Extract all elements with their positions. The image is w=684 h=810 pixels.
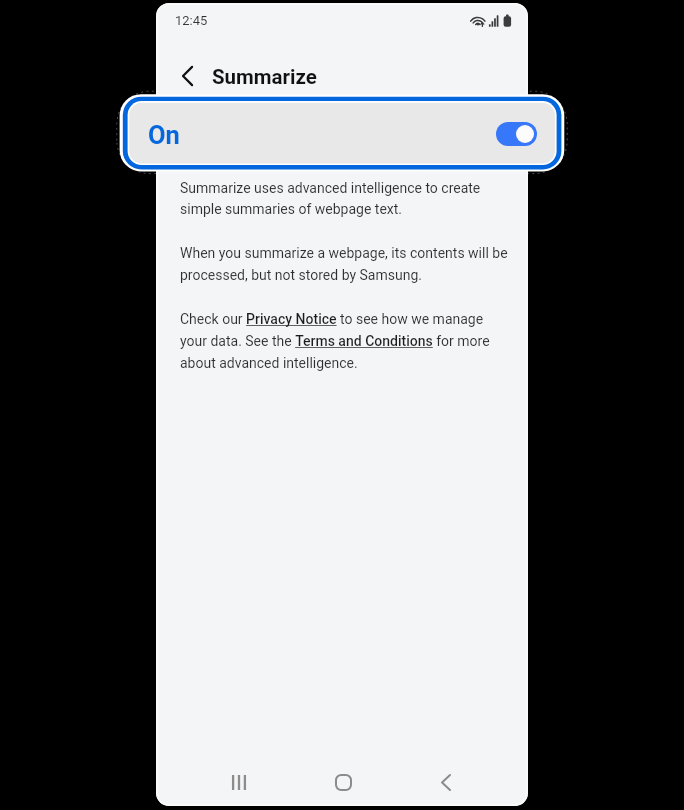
button[interactable]: Recent apps <box>211 760 267 804</box>
button[interactable]: Back <box>418 760 474 804</box>
button[interactable]: Home <box>315 760 371 804</box>
staticText: On <box>148 120 180 150</box>
button[interactable]: On <box>119 93 565 172</box>
staticText: 12:45 <box>175 13 208 28</box>
button[interactable]: Summarize on <box>496 122 537 146</box>
button[interactable]: Back <box>170 59 204 93</box>
staticText: Summarize <box>212 65 317 89</box>
staticText: Summarize uses advanced intelligence to … <box>180 180 508 371</box>
